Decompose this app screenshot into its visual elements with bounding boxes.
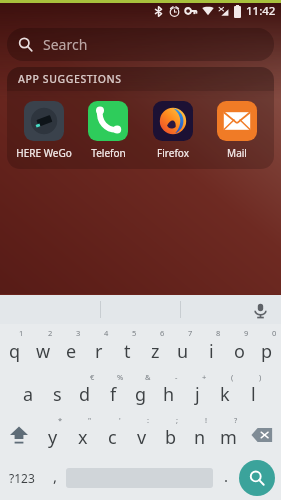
staticText: *	[58, 415, 63, 425]
staticText: "	[88, 415, 92, 425]
button[interactable]: Firefox	[142, 101, 204, 160]
staticText: .	[224, 466, 229, 486]
staticText: 0	[272, 328, 277, 338]
button[interactable]: 6	[141, 326, 169, 370]
staticText: Telefon	[91, 146, 126, 160]
staticText: Firefox	[157, 146, 189, 160]
staticText: k	[220, 382, 230, 407]
button[interactable]: '	[98, 413, 127, 456]
button[interactable]: %	[99, 370, 127, 413]
staticText: l	[251, 382, 256, 407]
button[interactable]: 9	[225, 326, 253, 370]
staticText: )	[259, 372, 262, 382]
staticText: j	[195, 382, 200, 407]
staticText: 6	[160, 328, 165, 338]
staticText: g	[135, 382, 147, 407]
button[interactable]: *	[38, 413, 68, 456]
staticText: ?123	[9, 470, 35, 486]
staticText: 8	[216, 328, 221, 338]
staticText: o	[234, 339, 245, 364]
button[interactable]: Search	[7, 28, 274, 61]
button[interactable]: .	[213, 456, 239, 500]
staticText: 7	[188, 328, 193, 338]
staticText: h	[163, 382, 175, 407]
button[interactable]: €	[71, 370, 99, 413]
button[interactable]: Shift	[0, 413, 38, 456]
button[interactable]: ;	[156, 413, 185, 456]
button[interactable]: )	[239, 370, 267, 413]
button[interactable]: 3	[57, 326, 85, 370]
staticText: a	[23, 382, 34, 407]
staticText: m	[220, 425, 237, 450]
button[interactable]: ,	[44, 456, 66, 500]
staticText: r	[95, 339, 103, 364]
staticText: :	[147, 415, 150, 425]
staticText: 1	[19, 328, 24, 338]
staticText: '	[119, 415, 121, 425]
staticText: u	[177, 339, 189, 364]
staticText: -	[175, 372, 178, 382]
button[interactable]: ?123	[0, 456, 44, 500]
staticText: 5	[132, 328, 137, 338]
button[interactable]: -	[155, 370, 183, 413]
staticText: x	[78, 425, 88, 450]
staticText: €	[90, 372, 95, 382]
button[interactable]: ?	[214, 413, 243, 456]
button[interactable]: +	[183, 370, 211, 413]
staticText: 4	[104, 328, 109, 338]
staticText: b	[165, 425, 177, 450]
staticText: d	[79, 382, 91, 407]
staticText: e	[66, 339, 77, 364]
button[interactable]: Backspace	[243, 413, 281, 456]
button[interactable]: 4	[85, 326, 113, 370]
staticText: s	[53, 382, 62, 407]
button[interactable]: 2	[29, 326, 57, 370]
staticText: q	[9, 339, 21, 364]
staticText: ;	[176, 415, 179, 425]
staticText: +	[202, 372, 207, 382]
button[interactable]: a	[14, 370, 43, 413]
staticText: 3	[76, 328, 81, 338]
staticText: v	[137, 425, 147, 450]
staticText: 11:42	[246, 3, 276, 19]
staticText: t	[124, 339, 131, 364]
staticText: p	[261, 339, 273, 364]
button[interactable]: 8	[197, 326, 225, 370]
staticText: n	[194, 425, 206, 450]
staticText: c	[108, 425, 117, 450]
staticText: z	[151, 339, 160, 364]
staticText: 9	[244, 328, 249, 338]
staticText: y	[48, 425, 58, 450]
button[interactable]: &	[127, 370, 155, 413]
button[interactable]: 0	[253, 326, 281, 370]
button[interactable]: :	[127, 413, 156, 456]
staticText: i	[209, 339, 214, 364]
staticText: 2	[48, 328, 53, 338]
button[interactable]: Search	[239, 460, 275, 496]
staticText: Search	[43, 35, 88, 54]
staticText: ?	[234, 415, 238, 425]
button[interactable]: Mail	[206, 101, 268, 160]
staticText: &	[145, 372, 151, 382]
button[interactable]: "	[68, 413, 98, 456]
staticText: w	[36, 339, 51, 364]
staticText: (	[231, 372, 234, 382]
staticText: %	[117, 372, 124, 382]
staticText: HERE WeGo	[16, 146, 72, 160]
button[interactable]: Telefon	[77, 101, 139, 160]
staticText: f	[110, 382, 117, 407]
button[interactable]: (	[211, 370, 239, 413]
staticText: APP SUGGESTIONS	[18, 72, 122, 86]
button[interactable]: Voice input	[249, 299, 271, 321]
staticText: ,	[53, 466, 58, 486]
button[interactable]: s	[43, 370, 71, 413]
button[interactable]: 1	[0, 326, 29, 370]
staticText: Mail	[227, 146, 247, 160]
button[interactable]: !	[185, 413, 214, 456]
staticText: !	[205, 415, 208, 425]
button[interactable]: 5	[113, 326, 141, 370]
button[interactable]: HERE WeGo	[13, 101, 75, 160]
button[interactable]: 7	[169, 326, 197, 370]
